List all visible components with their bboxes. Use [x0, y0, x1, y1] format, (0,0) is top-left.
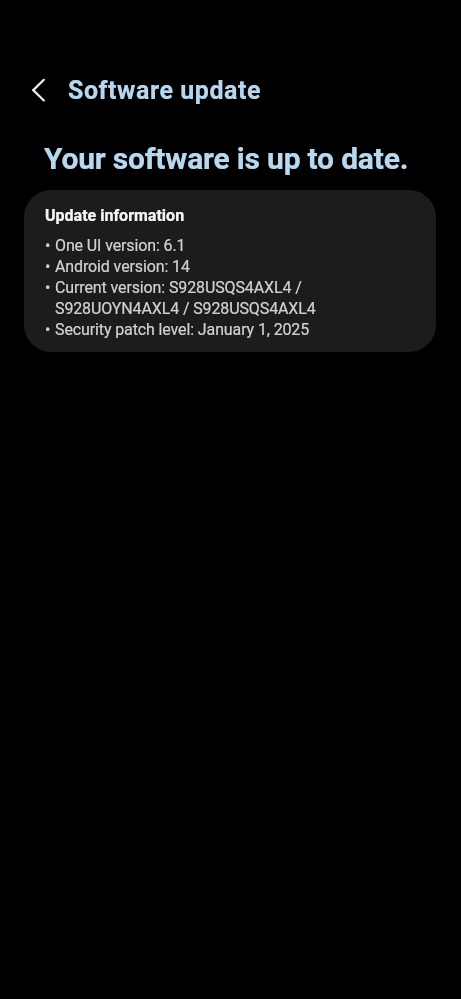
staticText: Update information: [45, 206, 185, 225]
staticText: •: [45, 277, 55, 298]
staticText: Software update: [68, 76, 262, 105]
staticText: One UI version: 6.1: [55, 235, 186, 256]
button[interactable]: Back: [15, 68, 59, 112]
staticText: •: [45, 319, 55, 340]
staticText: Security patch level: January 1, 2025: [55, 319, 310, 340]
staticText: Current version: S928USQS4AXL4 / S928UOY…: [55, 277, 316, 319]
staticText: •: [45, 235, 55, 256]
staticText: Android version: 14: [55, 256, 190, 277]
staticText: •: [45, 256, 55, 277]
staticText: Your software is up to date.: [44, 141, 409, 176]
